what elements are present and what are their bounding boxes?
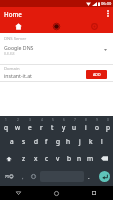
staticText: 5 <box>52 118 54 122</box>
staticText: 2 <box>17 118 19 122</box>
staticText: t <box>51 123 54 132</box>
staticText: 3 <box>29 118 31 122</box>
button[interactable]: Shift <box>0 150 18 167</box>
button[interactable]: 5 <box>47 116 58 133</box>
button[interactable]: n <box>74 150 85 167</box>
staticText: b <box>67 154 71 163</box>
button[interactable]: ADD <box>86 70 107 79</box>
staticText: l <box>101 137 103 146</box>
button[interactable]: h <box>63 133 74 150</box>
staticText: 0 <box>107 118 109 122</box>
staticText: u <box>72 123 77 132</box>
button[interactable]: Back <box>0 186 37 200</box>
staticText: . <box>88 173 90 181</box>
button[interactable]: 6 <box>58 116 69 133</box>
button[interactable]: 1 <box>0 116 12 133</box>
staticText: w <box>15 123 21 132</box>
staticText: instant-it.at <box>4 72 32 79</box>
staticText: ?1☺ <box>5 174 14 180</box>
staticText: h <box>66 137 71 146</box>
button[interactable]: c <box>41 150 52 167</box>
button[interactable]: d <box>30 133 41 150</box>
button[interactable]: 8 <box>80 116 91 133</box>
button[interactable]: b <box>63 150 74 167</box>
staticText: Home <box>4 10 22 18</box>
staticText: 4 <box>41 118 43 122</box>
staticText: r <box>40 123 43 132</box>
staticText: k <box>89 137 93 146</box>
staticText: v <box>56 154 60 163</box>
button[interactable]: f <box>41 133 52 150</box>
button[interactable]: 2 <box>12 116 24 133</box>
staticText: o <box>95 123 99 132</box>
button[interactable]: v <box>52 150 63 167</box>
staticText: f <box>45 137 48 146</box>
button[interactable]: a <box>6 133 18 150</box>
button[interactable]: Backspace <box>96 150 113 167</box>
button[interactable]: 9 <box>91 116 102 133</box>
button[interactable]: l <box>96 133 107 150</box>
staticText: g <box>56 137 60 146</box>
button[interactable]: j <box>74 133 85 150</box>
staticText: m <box>87 154 94 163</box>
button[interactable]: 0 <box>102 116 113 133</box>
staticText: 9 <box>96 118 98 122</box>
staticText: , <box>22 173 24 181</box>
staticText: a <box>10 137 14 146</box>
staticText: 8.8.8.8 <box>4 51 15 56</box>
staticText: n <box>77 154 82 163</box>
button[interactable]: Home <box>37 186 75 200</box>
button[interactable]: 3 <box>24 116 36 133</box>
staticText: x <box>34 154 38 163</box>
staticText: y <box>62 123 66 132</box>
button[interactable]: Emoji <box>28 167 39 186</box>
staticText: Google DNS <box>4 44 34 51</box>
button[interactable]: Comma <box>18 167 28 186</box>
staticText: DNS Server <box>4 36 27 42</box>
button[interactable]: k <box>85 133 96 150</box>
staticText: e <box>28 123 32 132</box>
button[interactable]: 4 <box>36 116 47 133</box>
button[interactable]: Recents <box>75 186 113 200</box>
button[interactable]: Home tab <box>0 20 37 33</box>
button[interactable]: m <box>85 150 96 167</box>
button[interactable]: z <box>18 150 30 167</box>
staticText: p <box>106 123 110 132</box>
button[interactable]: Symbols <box>0 167 18 186</box>
staticText: d <box>34 137 38 146</box>
button[interactable]: Settings tab <box>75 20 113 33</box>
staticText: ADD <box>93 72 101 77</box>
button[interactable]: Period <box>84 167 94 186</box>
button[interactable]: More options <box>102 7 113 20</box>
button[interactable]: Log tab <box>37 20 75 33</box>
staticText: s <box>22 137 26 146</box>
staticText: 6 <box>63 118 65 122</box>
staticText: 7 <box>74 118 76 122</box>
staticText: i <box>85 123 87 132</box>
button[interactable]: s <box>18 133 30 150</box>
staticText: 06:00 <box>101 1 112 6</box>
staticText: q <box>4 123 8 132</box>
button[interactable]: x <box>30 150 41 167</box>
staticText: c <box>45 154 49 163</box>
staticText: Domain <box>4 66 20 72</box>
staticText: 1 <box>5 118 7 122</box>
button[interactable]: 7 <box>69 116 80 133</box>
staticText: 8 <box>85 118 87 122</box>
button[interactable]: Enter <box>95 167 113 186</box>
staticText: z <box>22 154 26 163</box>
button[interactable]: g <box>52 133 63 150</box>
staticText: j <box>79 137 81 146</box>
